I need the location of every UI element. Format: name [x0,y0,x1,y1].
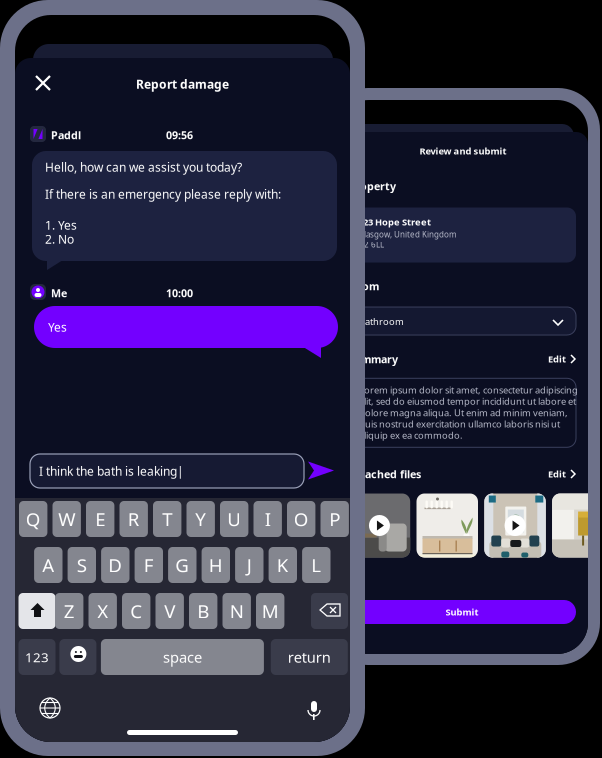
staticText: quis nostrud exercitation ullamco labori… [359,418,560,430]
staticText: Property [348,179,396,193]
staticText: G [175,553,189,577]
staticText: N [230,599,244,623]
button[interactable]: V [155,593,184,629]
button[interactable]: Z [55,593,83,629]
staticText: E [95,507,105,531]
staticText: If there is an emergency please reply wi… [45,186,281,202]
button[interactable]: U [220,501,248,537]
staticText: H [209,553,223,577]
button[interactable]: space [101,639,264,675]
staticText: R [128,507,140,531]
staticText: P [329,507,340,531]
button[interactable]: P [320,501,349,537]
staticText: L [311,553,321,577]
button[interactable]: H [202,547,230,583]
button[interactable]: A [34,547,62,583]
staticText: dolore magna aliqua. Ut enim ad minim ve… [359,406,568,419]
staticText: O [294,507,309,531]
button[interactable]: G [168,547,196,583]
button[interactable]: 123 [18,639,55,675]
staticText: B [197,599,209,623]
staticText: J [247,553,252,577]
button[interactable]: B [189,593,217,629]
staticText: Room [348,279,379,293]
staticText: elit, sed do eiusmod tempor incididunt u… [359,395,576,407]
button[interactable]: O [287,501,315,537]
button[interactable]: Submit [348,600,576,624]
button[interactable]: N [222,593,251,629]
staticText: Yes [48,319,67,335]
button[interactable]: Edit [522,352,576,366]
button[interactable]: Shift [18,593,55,629]
staticText: A [42,553,54,577]
button[interactable]: D [101,547,129,583]
staticText: U [227,507,241,531]
staticText: Hello, how can we assist you today? [45,159,242,175]
staticText: Attached files [348,467,421,481]
button[interactable]: L [302,547,330,583]
staticText: I [265,507,271,531]
staticText: Review and submit [419,145,506,157]
button[interactable]: Emoji [59,639,96,675]
button[interactable]: Send [310,458,336,483]
staticText: Bathroom [359,315,404,328]
button[interactable]: S [68,547,96,583]
staticText: Report damage [136,76,229,92]
staticText: 123 Hope Street [358,216,431,228]
button[interactable]: return [271,639,348,675]
staticText: Submit [445,606,478,618]
button[interactable]: Y [186,501,215,537]
staticText: I think the bath is leaking| [39,463,184,479]
button[interactable]: Close [28,68,58,98]
button[interactable]: Bathroom [348,307,576,335]
staticText: Z [64,599,75,623]
button[interactable]: Q [19,501,47,537]
button[interactable]: K [269,547,297,583]
staticText: F [144,553,154,577]
button[interactable]: Dictate [305,699,323,723]
staticText: G2 6LL [358,239,384,250]
staticText: Summary [348,352,398,366]
button[interactable]: W [52,501,81,537]
staticText: Edit [548,468,566,480]
staticText: 1. Yes [45,217,77,233]
staticText: M [262,599,279,623]
button[interactable]: Edit [522,467,576,481]
staticText: K [277,553,289,577]
staticText: Y [195,507,206,531]
button[interactable]: T [153,501,181,537]
staticText: Glasgow, United Kingdom [358,229,456,240]
button[interactable]: C [122,593,150,629]
staticText: C [130,599,142,623]
button[interactable]: E [86,501,114,537]
staticText: Lorem ipsum dolor sit amet, consectetur … [359,384,578,396]
staticText: Paddl [51,128,81,142]
button[interactable]: I [253,501,282,537]
staticText: X [97,599,108,623]
staticText: 2. No [45,231,74,247]
staticText: aliquip ex ea commodo. [359,429,463,441]
staticText: Me [51,286,67,300]
button[interactable]: X [88,593,117,629]
button[interactable]: F [135,547,163,583]
staticText: D [108,553,122,577]
button[interactable]: R [119,501,148,537]
staticText: Q [26,507,41,531]
staticText: W [58,507,75,531]
button[interactable]: J [235,547,263,583]
staticText: V [164,599,175,623]
staticText: space [163,647,202,667]
staticText: 123 [25,648,49,666]
button[interactable]: M [256,593,284,629]
staticText: S [77,553,87,577]
button[interactable]: Change keyboard [39,697,61,719]
staticText: return [288,647,331,667]
staticText: T [162,507,172,531]
button[interactable]: Delete [311,593,348,629]
staticText: Edit [548,353,566,365]
staticText: 09:56 [166,128,193,142]
staticText: 10:00 [166,286,193,300]
